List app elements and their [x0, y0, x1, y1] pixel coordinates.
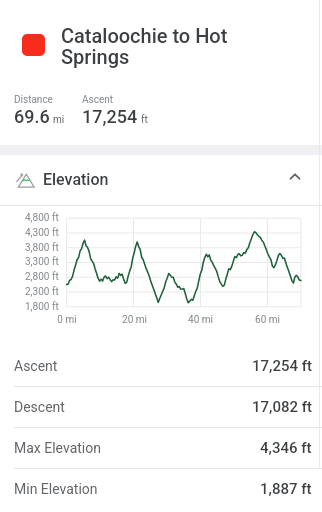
- staticText: 2,800 ft: [25, 271, 59, 283]
- button[interactable]: Descent: [0, 387, 322, 427]
- button[interactable]: Min Elevation: [0, 469, 322, 509]
- staticText: 2,300 ft: [25, 286, 59, 298]
- staticText: Distance: [14, 94, 53, 106]
- staticText: 17,082 ft: [252, 398, 312, 416]
- staticText: Descent: [14, 399, 65, 415]
- button[interactable]: Max Elevation: [0, 428, 322, 468]
- staticText: 17,254: [82, 106, 138, 127]
- staticText: Cataloochie to Hot Springs: [61, 24, 241, 69]
- staticText: 20 mi: [122, 314, 147, 326]
- staticText: 4,800 ft: [25, 212, 59, 224]
- staticText: Elevation: [43, 170, 109, 189]
- staticText: 4,346 ft: [260, 439, 312, 457]
- staticText: 1,800 ft: [25, 301, 59, 313]
- button[interactable]: Ascent: [0, 345, 322, 386]
- staticText: ft: [141, 114, 148, 126]
- staticText: Max Elevation: [14, 440, 101, 456]
- staticText: Ascent: [82, 94, 114, 106]
- staticText: 4,300 ft: [25, 227, 59, 239]
- button[interactable]: Elevation: [0, 155, 322, 205]
- staticText: 60 mi: [255, 314, 280, 326]
- staticText: Ascent: [14, 358, 58, 374]
- staticText: Min Elevation: [14, 481, 98, 497]
- staticText: 3,300 ft: [25, 256, 59, 268]
- staticText: 40 mi: [188, 314, 213, 326]
- other: Collapse Elevation: [288, 173, 302, 187]
- staticText: 69.6: [14, 106, 50, 127]
- staticText: mi: [53, 114, 65, 126]
- staticText: 1,887 ft: [260, 480, 312, 498]
- staticText: 0 mi: [57, 314, 77, 326]
- staticText: 3,800 ft: [25, 242, 59, 254]
- staticText: 17,254 ft: [252, 357, 312, 375]
